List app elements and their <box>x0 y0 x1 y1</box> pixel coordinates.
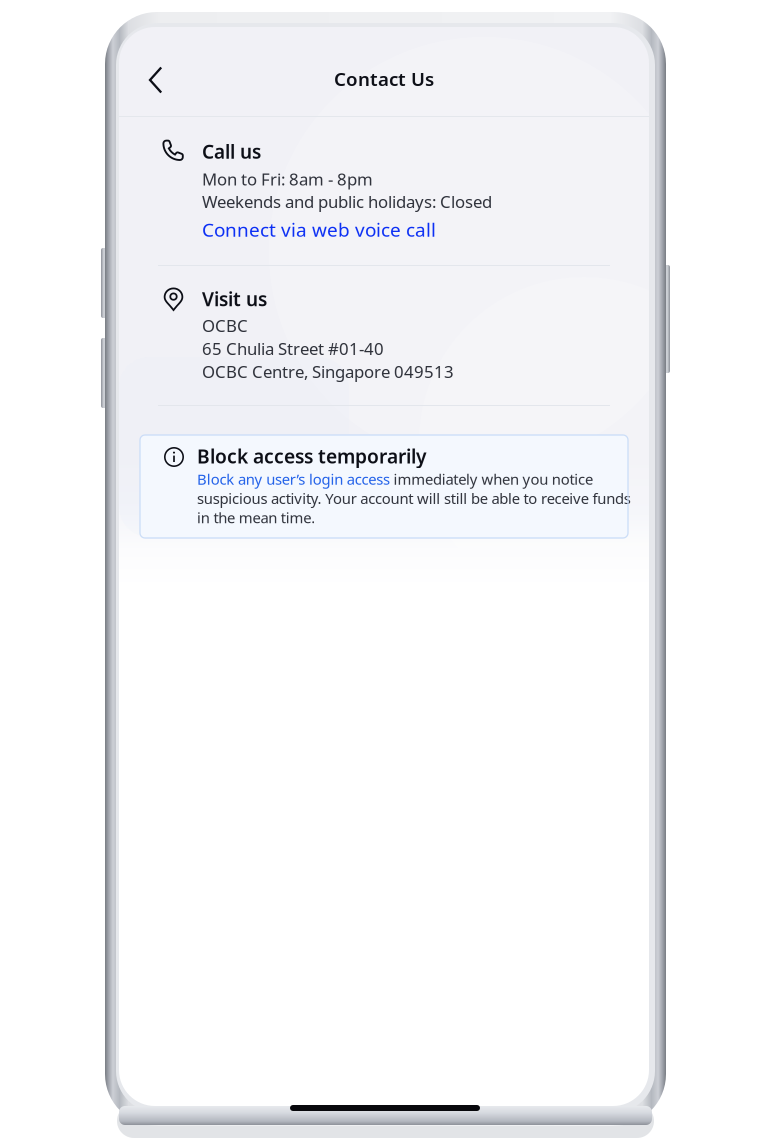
staticText: Visit us <box>202 286 267 312</box>
staticText: Weekends and public holidays: Closed <box>202 190 492 213</box>
staticText: Connect via web voice call <box>202 217 436 242</box>
staticText: Block access temporarily <box>197 443 426 469</box>
button[interactable]: Back <box>119 27 189 116</box>
staticText: OCBC Centre, Singapore 049513 <box>202 360 454 383</box>
staticText: Contact Us <box>334 66 434 91</box>
button[interactable]: Block access temporarily <box>140 435 628 538</box>
staticText: Block any user’s login access immediatel… <box>197 469 631 527</box>
staticText: 65 Chulia Street #01-40 <box>202 337 384 360</box>
staticText: OCBC <box>202 314 248 337</box>
staticText: Call us <box>202 139 261 164</box>
button[interactable]: Connect via web voice call <box>202 213 436 246</box>
staticText: Mon to Fri: 8am - 8pm <box>202 168 373 190</box>
